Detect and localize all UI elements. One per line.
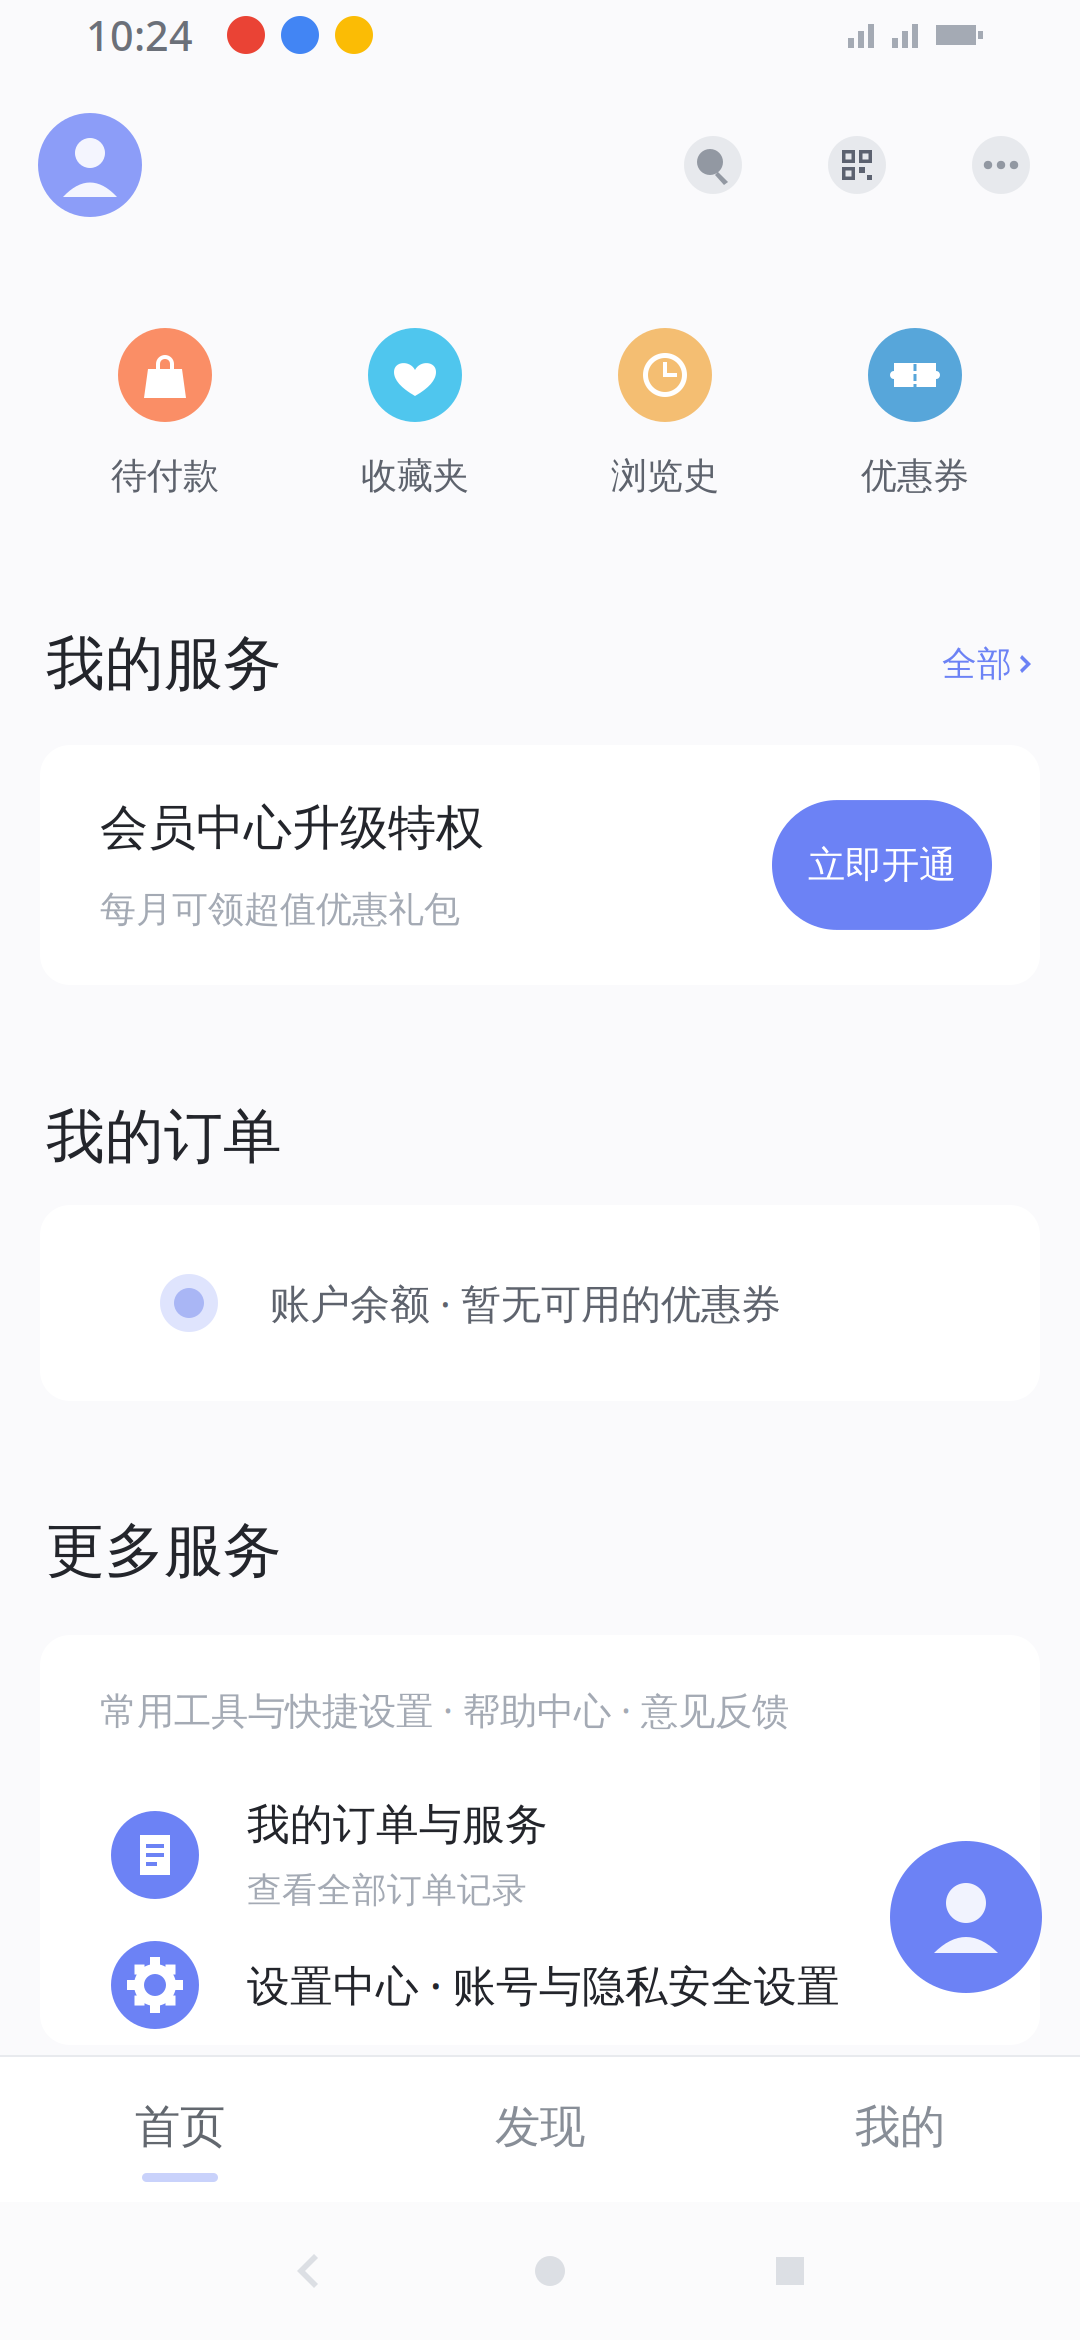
staticText: 会员中心升级特权	[100, 798, 484, 857]
staticText: 我的订单与服务	[247, 1798, 548, 1851]
button[interactable]: Customer service	[890, 1841, 1042, 1993]
staticText: 发现	[495, 2099, 585, 2155]
button[interactable]: Home	[528, 2249, 572, 2293]
staticText: 10:24	[86, 8, 193, 62]
staticText: 查看全部订单记录	[247, 1869, 527, 1911]
staticText: 更多服务	[46, 1515, 282, 1587]
button[interactable]: 优惠券	[790, 328, 1040, 498]
button[interactable]: 待付款	[40, 328, 290, 498]
staticText: 我的服务	[46, 628, 282, 700]
button[interactable]: Back	[288, 2249, 332, 2293]
button[interactable]: 会员中心升级特权	[40, 745, 1040, 985]
button[interactable]: Search	[684, 136, 742, 194]
button[interactable]: 全部	[942, 631, 1032, 697]
staticText: 待付款	[111, 454, 219, 498]
staticText: 设置中心 · 账号与隐私安全设置	[247, 1957, 840, 2013]
staticText: 我的订单	[46, 1101, 282, 1173]
button[interactable]: 收藏夹	[290, 328, 540, 498]
button[interactable]: 浏览史	[540, 328, 790, 498]
button[interactable]: More	[972, 136, 1030, 194]
staticText: 优惠券	[861, 454, 969, 498]
staticText: 立即开通	[808, 842, 956, 888]
button[interactable]: Recents	[768, 2249, 812, 2293]
staticText: 首页	[135, 2099, 225, 2155]
button[interactable]: 账户余额 · 暂无可用的优惠券	[40, 1205, 1040, 1401]
staticText: 账户余额 · 暂无可用的优惠券	[270, 1276, 781, 1329]
button[interactable]: Scan	[828, 136, 886, 194]
staticText: 我的	[855, 2099, 945, 2155]
button[interactable]: 我的订单与服务	[40, 1785, 1040, 1925]
staticText: 每月可领超值优惠礼包	[100, 887, 460, 932]
button[interactable]: 设置中心 · 账号与隐私安全设置	[40, 1925, 1040, 2045]
staticText: 浏览史	[611, 454, 719, 498]
button[interactable]: 我的	[720, 2057, 1080, 2202]
button[interactable]: 发现	[360, 2057, 720, 2202]
staticText: 收藏夹	[361, 454, 469, 498]
staticText: 全部	[942, 643, 1012, 685]
staticText: 常用工具与快捷设置 · 帮助中心 · 意见反馈	[100, 1685, 789, 1735]
button[interactable]: Profile	[38, 113, 142, 217]
button[interactable]: 首页	[0, 2057, 360, 2202]
